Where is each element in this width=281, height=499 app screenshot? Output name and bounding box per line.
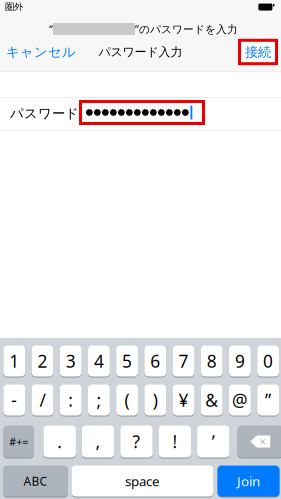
staticText: , (96, 430, 101, 453)
staticText: ( (125, 388, 130, 411)
staticText: ”のパスワードを入力 (135, 22, 238, 36)
button[interactable]: 9 (229, 345, 251, 377)
staticText: 4 (94, 349, 104, 372)
staticText: 3 (66, 349, 76, 372)
button[interactable]: 接続 (238, 39, 278, 65)
staticText: ? (132, 430, 140, 453)
staticText: 圏外 (5, 1, 23, 13)
staticText: . (57, 430, 62, 453)
staticText: Join (237, 472, 260, 490)
button[interactable]: , (82, 425, 114, 458)
staticText: キャンセル (6, 44, 76, 60)
button[interactable] (79, 100, 205, 125)
button[interactable]: 0 (257, 345, 279, 377)
button[interactable]: 7 (173, 345, 194, 377)
button[interactable]: - (3, 384, 25, 416)
staticText: パスワード入力 (98, 45, 182, 59)
staticText: 9 (235, 349, 245, 372)
button[interactable]: ) (144, 384, 166, 416)
button[interactable]: Delete (237, 425, 281, 458)
button[interactable]: ( (116, 384, 138, 416)
button[interactable]: 8 (201, 345, 223, 377)
staticText: space (125, 472, 160, 490)
staticText: 8 (207, 349, 217, 372)
staticText: : (68, 388, 73, 411)
staticText: 接続 (245, 44, 271, 60)
staticText: 2 (37, 349, 47, 372)
staticText: ’ (212, 430, 215, 453)
button[interactable]: & (201, 384, 223, 416)
button[interactable]: Join (217, 465, 279, 497)
staticText: 6 (150, 349, 160, 372)
staticText: / (39, 388, 45, 411)
staticText: 0 (263, 349, 273, 372)
button[interactable]: . (43, 425, 76, 458)
button[interactable]: space (71, 465, 213, 497)
button[interactable]: ” (257, 384, 279, 416)
button[interactable]: ! (159, 425, 191, 458)
button[interactable]: キャンセル (0, 36, 82, 68)
staticText: & (205, 388, 218, 411)
button[interactable]: 6 (144, 345, 166, 377)
button[interactable]: ’ (197, 425, 229, 458)
button[interactable]: 4 (88, 345, 110, 377)
button[interactable]: ABC (3, 465, 68, 497)
staticText: パスワード (10, 105, 79, 122)
button[interactable]: ? (120, 425, 153, 458)
button[interactable]: #+= (3, 425, 34, 458)
staticText: “ (49, 22, 53, 36)
staticText: ABC (23, 473, 47, 489)
button[interactable]: 3 (60, 345, 82, 377)
staticText: ) (153, 388, 158, 411)
staticText: 5 (122, 349, 132, 372)
staticText: ! (172, 430, 177, 453)
button[interactable]: ¥ (173, 384, 194, 416)
staticText: 7 (178, 349, 188, 372)
staticText: ; (96, 388, 101, 411)
staticText: - (11, 388, 17, 411)
button[interactable]: 1 (3, 345, 25, 377)
button[interactable]: @ (229, 384, 251, 416)
staticText: ¥ (178, 388, 188, 411)
staticText: @ (232, 388, 248, 411)
staticText: ” (265, 388, 271, 411)
button[interactable]: / (32, 384, 53, 416)
button[interactable]: 2 (32, 345, 53, 377)
staticText: 1 (9, 349, 19, 372)
staticText: × (259, 433, 266, 449)
button[interactable]: : (60, 384, 82, 416)
staticText: #+= (9, 434, 28, 449)
button[interactable]: 5 (116, 345, 138, 377)
button[interactable]: ; (88, 384, 110, 416)
